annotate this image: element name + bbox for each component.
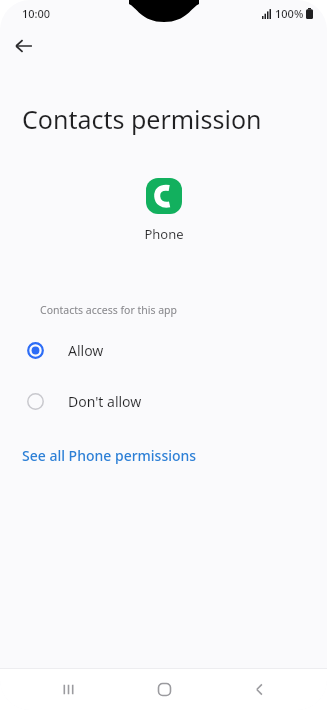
staticText: See all Phone permissions — [22, 446, 197, 465]
staticText: Don't allow — [68, 392, 142, 411]
button[interactable]: Don't allow — [0, 384, 327, 418]
staticText: Contacts access for this app — [40, 303, 327, 317]
staticText: 100% — [275, 6, 304, 21]
button[interactable]: Recents — [41, 669, 95, 710]
staticText: Phone — [144, 225, 184, 243]
staticText: Contacts permission — [22, 102, 311, 136]
button[interactable]: Allow — [0, 333, 327, 367]
staticText: Allow — [68, 341, 104, 360]
button[interactable]: See all Phone permissions — [0, 442, 327, 469]
button[interactable]: Home — [137, 669, 191, 710]
staticText: 10:00 — [22, 6, 51, 21]
button[interactable]: Back — [232, 669, 286, 710]
button[interactable]: Back — [8, 30, 40, 62]
